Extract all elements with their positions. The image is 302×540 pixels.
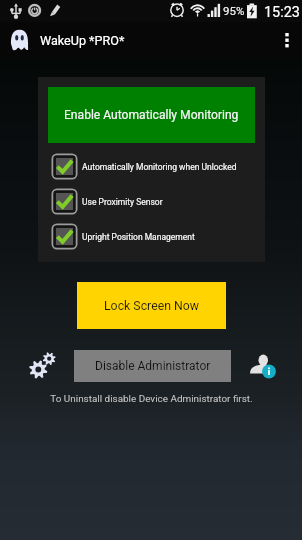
button[interactable]: Settings [22, 350, 54, 382]
button[interactable]: Disable Administrator [74, 350, 231, 382]
staticText: Disable Administrator [95, 359, 211, 373]
staticText: Use Proximity Sensor [82, 197, 163, 207]
staticText: Automatically Monitoring when Unlocked [82, 162, 237, 172]
staticText: 15:23 [264, 4, 300, 21]
button[interactable]: More options [272, 22, 302, 58]
button[interactable]: Lock Screen Now [77, 282, 226, 329]
staticText: Lock Screen Now [104, 299, 200, 313]
staticText: WakeUp *PRO* [40, 33, 125, 48]
staticText: Enable Automatically Monitoring [64, 108, 239, 122]
staticText: 95% [223, 4, 245, 17]
button[interactable]: Automatically Monitoring when Unlocked [38, 154, 265, 179]
button[interactable]: Upright Position Management [38, 224, 265, 249]
button[interactable]: Use Proximity Sensor [38, 189, 265, 214]
staticText: Upright Position Management [82, 232, 195, 242]
button[interactable]: Enable Automatically Monitoring [48, 87, 255, 143]
button[interactable]: Administrator info [247, 350, 279, 382]
staticText: To Uninstall disable Device Administrato… [50, 393, 253, 405]
